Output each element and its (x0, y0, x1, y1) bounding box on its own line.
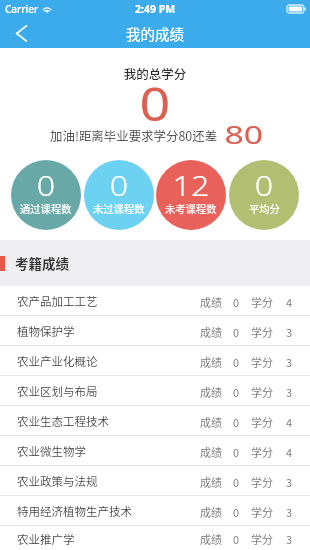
button[interactable]: 0 (11, 160, 81, 230)
staticText: 农业生态工程技术 (17, 413, 109, 430)
staticText: 我的成绩 (126, 23, 184, 44)
staticText: 学分 (251, 414, 273, 430)
staticText: 成绩 (200, 384, 222, 400)
button[interactable]: 农业政策与法规 (0, 466, 310, 495)
staticText: 农产品加工工艺 (17, 293, 98, 310)
staticText: 农业政策与法规 (17, 473, 98, 490)
staticText: 未过课程数 (93, 201, 145, 216)
button[interactable]: 农业微生物学 (0, 436, 310, 465)
staticText: 农业产业化概论 (17, 353, 98, 370)
button[interactable]: 农业生态工程技术 (0, 406, 310, 435)
button[interactable]: 农产品加工工艺 (0, 286, 310, 315)
staticText: 学分 (251, 474, 273, 490)
staticText: 我的总学分 (0, 64, 310, 82)
staticText: 通过课程数 (20, 201, 72, 216)
staticText: 加油!距离毕业要求学分80还差 (50, 127, 218, 145)
staticText: 学分 (251, 384, 273, 400)
staticText: 考籍成绩 (15, 253, 69, 273)
staticText: 成绩 (200, 294, 222, 310)
staticText: 学分 (251, 504, 273, 520)
staticText: 成绩 (200, 504, 222, 520)
staticText: 4 (286, 294, 293, 310)
button[interactable]: 0 (229, 160, 299, 230)
staticText: 0 (233, 444, 240, 460)
staticText: 80 (224, 116, 263, 151)
staticText: 成绩 (200, 324, 222, 340)
staticText: 农业微生物学 (17, 443, 86, 460)
staticText: 成绩 (200, 531, 222, 547)
staticText: 成绩 (200, 444, 222, 460)
staticText: 0 (233, 504, 240, 520)
staticText: 学分 (251, 354, 273, 370)
staticText: 0 (110, 166, 128, 204)
staticText: 3 (286, 474, 293, 490)
staticText: 4 (286, 414, 293, 430)
staticText: 3 (286, 324, 293, 340)
staticText: 3 (286, 384, 293, 400)
button[interactable]: 0 (84, 160, 154, 230)
staticText: 0 (37, 166, 55, 204)
staticText: 0 (233, 324, 240, 340)
staticText: 3 (286, 504, 293, 520)
staticText: 成绩 (200, 354, 222, 370)
staticText: 3 (286, 531, 293, 547)
staticText: 成绩 (200, 414, 222, 430)
staticText: 4 (286, 444, 293, 460)
staticText: 0 (233, 354, 240, 370)
staticText: 12 (173, 166, 209, 204)
staticText: 特用经济植物生产技术 (17, 503, 132, 520)
staticText: 0 (233, 474, 240, 490)
button[interactable]: 12 (156, 160, 226, 230)
button[interactable]: 农业推广学 (0, 526, 310, 550)
button[interactable]: 农业区划与布局 (0, 376, 310, 405)
staticText: 3 (286, 354, 293, 370)
staticText: 0 (233, 294, 240, 310)
staticText: Carrier (5, 2, 39, 16)
staticText: 未考课程数 (165, 201, 217, 216)
staticText: 0 (233, 414, 240, 430)
staticText: 农业区划与布局 (17, 383, 98, 400)
staticText: 植物保护学 (17, 323, 75, 340)
button[interactable]: 植物保护学 (0, 316, 310, 345)
staticText: 学分 (251, 294, 273, 310)
staticText: 成绩 (200, 474, 222, 490)
staticText: 学分 (251, 324, 273, 340)
staticText: 0 (0, 72, 310, 135)
staticText: 0 (255, 166, 273, 204)
staticText: 学分 (251, 444, 273, 460)
staticText: 0 (233, 531, 240, 547)
staticText: 平均分 (249, 201, 280, 216)
staticText: 2:49 PM (135, 2, 176, 16)
staticText: 0 (233, 384, 240, 400)
button[interactable]: 特用经济植物生产技术 (0, 496, 310, 525)
button[interactable]: 农业产业化概论 (0, 346, 310, 375)
button[interactable]: Back (0, 18, 42, 48)
staticText: 学分 (251, 531, 273, 547)
staticText: 农业推广学 (17, 531, 75, 548)
